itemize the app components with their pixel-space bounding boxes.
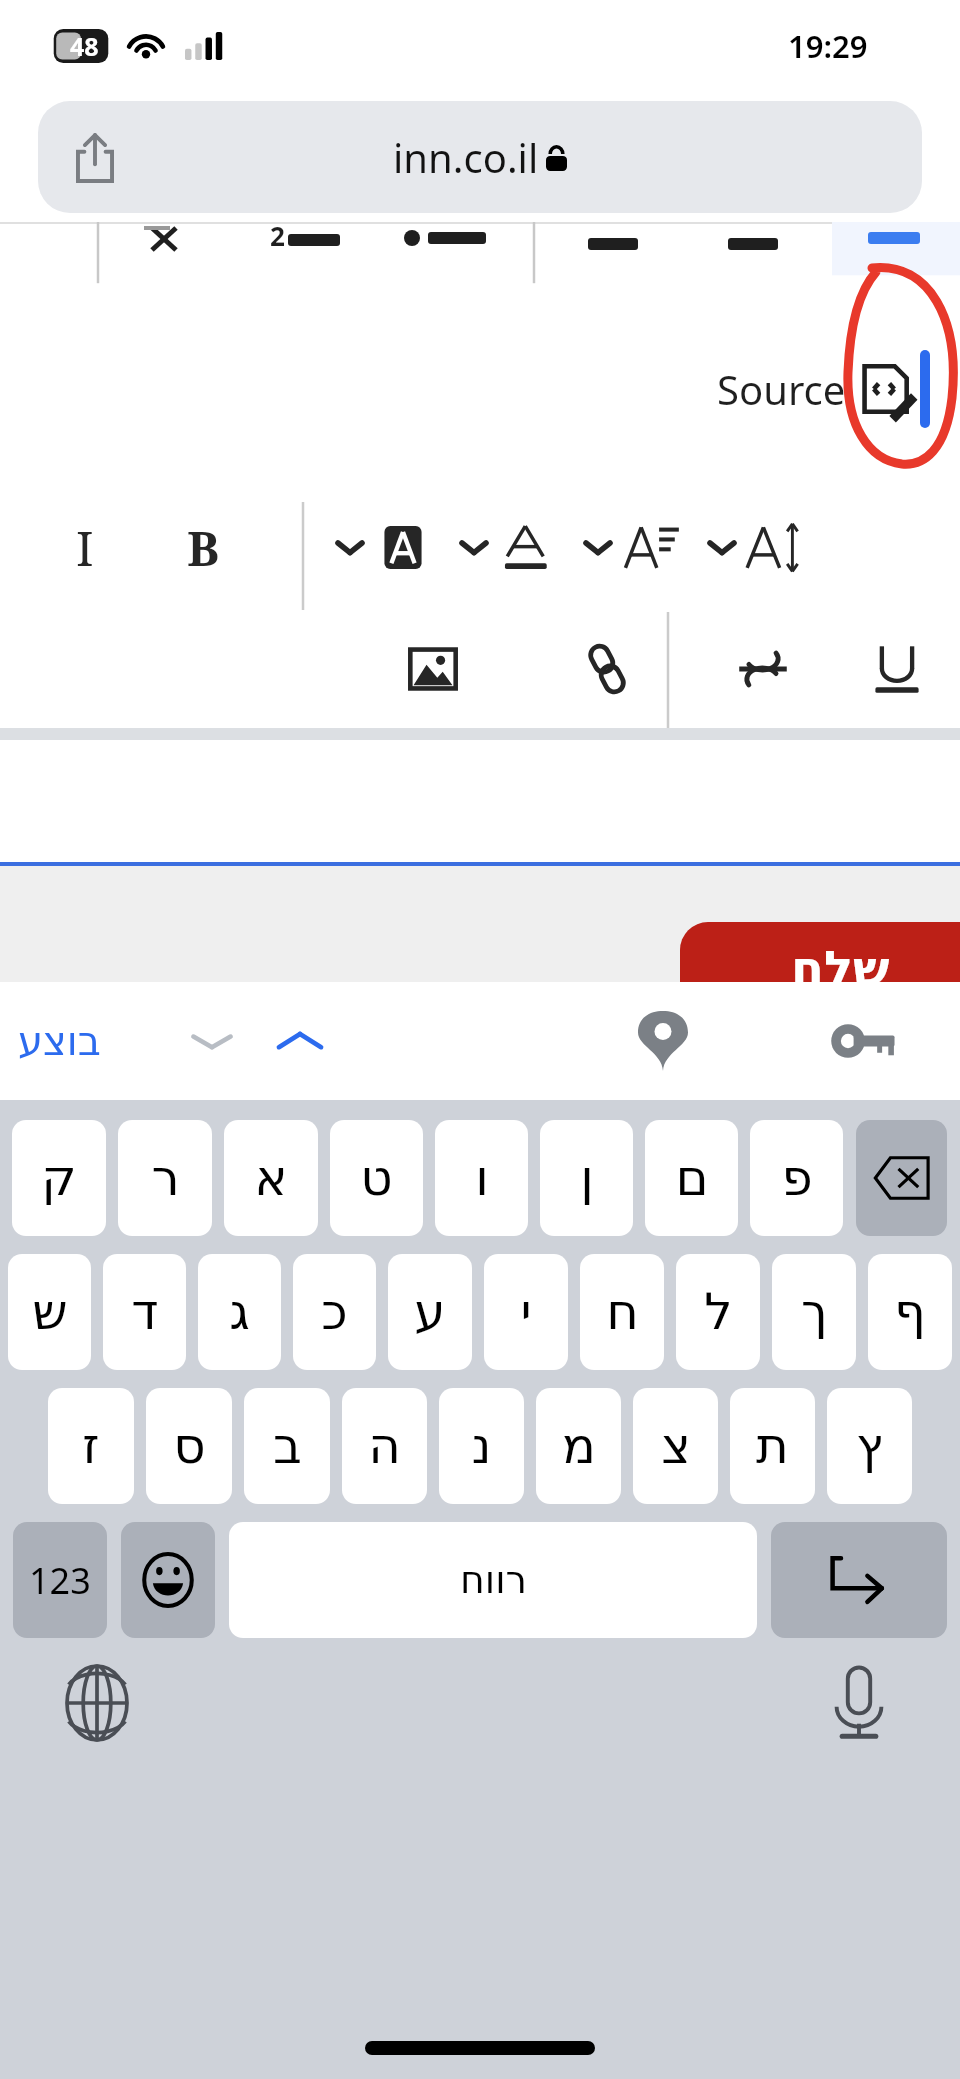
- button[interactable]: Previous: [170, 999, 254, 1083]
- staticText: ק: [41, 1149, 77, 1207]
- button[interactable]: שלח: [680, 922, 960, 1038]
- staticText: ג: [229, 1283, 250, 1341]
- button[interactable]: [702, 518, 804, 576]
- staticText: ב: [273, 1417, 302, 1475]
- staticText: כ: [321, 1283, 348, 1341]
- button[interactable]: כ: [293, 1254, 376, 1370]
- button[interactable]: Share: [60, 122, 130, 192]
- button[interactable]: Return: [771, 1522, 947, 1638]
- button[interactable]: ט: [330, 1120, 423, 1236]
- staticText: ן: [580, 1149, 594, 1207]
- button[interactable]: ג: [198, 1254, 281, 1370]
- button[interactable]: Source code: [854, 359, 914, 419]
- button[interactable]: א: [224, 1120, 318, 1236]
- staticText: 123: [29, 1556, 91, 1605]
- button[interactable]: ן: [540, 1120, 633, 1236]
- staticText: B: [187, 515, 220, 580]
- staticText: שלח: [791, 940, 890, 996]
- staticText: inn.co.il: [393, 130, 539, 184]
- button[interactable]: ר: [118, 1120, 212, 1236]
- button[interactable]: Backspace: [856, 1120, 947, 1236]
- button[interactable]: Strikethrough: [728, 634, 798, 704]
- staticText: בוצע: [18, 1018, 101, 1065]
- button[interactable]: ץ: [827, 1388, 912, 1504]
- staticText: א: [254, 1149, 288, 1207]
- button[interactable]: ע: [388, 1254, 472, 1370]
- button[interactable]: Insert image: [398, 634, 468, 704]
- button[interactable]: 123: [13, 1522, 107, 1638]
- staticText: ת: [756, 1417, 789, 1475]
- button[interactable]: ה: [342, 1388, 427, 1504]
- button[interactable]: ש: [8, 1254, 91, 1370]
- staticText: 2: [270, 218, 285, 253]
- staticText: ל: [704, 1283, 733, 1341]
- button[interactable]: בוצע: [18, 1018, 101, 1065]
- button[interactable]: ק: [12, 1120, 106, 1236]
- button[interactable]: B: [170, 514, 236, 580]
- button[interactable]: ל: [676, 1254, 760, 1370]
- staticText: פ: [781, 1149, 813, 1207]
- button[interactable]: צ: [633, 1388, 718, 1504]
- staticText: 19:29: [788, 25, 868, 67]
- button[interactable]: Location: [621, 999, 705, 1083]
- staticText: ש: [32, 1283, 68, 1341]
- staticText: ץ: [856, 1417, 883, 1475]
- staticText: Source: [717, 362, 846, 416]
- button[interactable]: ף: [868, 1254, 952, 1370]
- button[interactable]: ד: [103, 1254, 186, 1370]
- staticText: ז: [82, 1417, 100, 1475]
- staticText: ם: [675, 1149, 709, 1207]
- staticText: צ: [661, 1417, 691, 1475]
- button[interactable]: Insert link: [572, 634, 642, 704]
- staticText: ך: [801, 1283, 828, 1341]
- staticText: ע: [414, 1283, 446, 1341]
- button[interactable]: ת: [730, 1388, 815, 1504]
- staticText: ט: [360, 1149, 393, 1207]
- button[interactable]: [578, 518, 680, 576]
- staticText: ף: [894, 1283, 926, 1341]
- staticText: I: [76, 515, 94, 580]
- staticText: ר: [151, 1149, 180, 1207]
- button[interactable]: Next: [258, 999, 342, 1083]
- button[interactable]: ך: [772, 1254, 856, 1370]
- staticText: נ: [471, 1417, 492, 1475]
- button[interactable]: ס: [146, 1388, 232, 1504]
- button[interactable]: Share: [38, 101, 922, 213]
- button[interactable]: י: [484, 1254, 568, 1370]
- button[interactable]: ב: [244, 1388, 330, 1504]
- button[interactable]: ו: [435, 1120, 528, 1236]
- staticText: ה: [368, 1417, 401, 1475]
- button[interactable]: Underline: [862, 634, 932, 704]
- button[interactable]: I: [52, 514, 118, 580]
- button[interactable]: ז: [48, 1388, 134, 1504]
- staticText: ו: [475, 1149, 489, 1207]
- button[interactable]: Passwords: [824, 999, 908, 1083]
- staticText: ס: [173, 1417, 206, 1475]
- staticText: מ: [562, 1417, 596, 1475]
- button[interactable]: ח: [580, 1254, 664, 1370]
- staticText: ד: [131, 1283, 159, 1341]
- staticText: י: [520, 1283, 532, 1341]
- button[interactable]: Emoji: [121, 1522, 215, 1638]
- button[interactable]: Change keyboard: [52, 1658, 142, 1748]
- button[interactable]: Dictation: [814, 1658, 904, 1748]
- button[interactable]: נ: [439, 1388, 524, 1504]
- button[interactable]: מ: [536, 1388, 621, 1504]
- staticText: ח: [606, 1283, 639, 1341]
- staticText: רווח: [460, 1558, 527, 1602]
- button[interactable]: רווח: [229, 1522, 757, 1638]
- button[interactable]: פ: [750, 1120, 843, 1236]
- button[interactable]: [454, 518, 556, 576]
- button[interactable]: ם: [645, 1120, 738, 1236]
- staticText: 48: [70, 29, 99, 63]
- button[interactable]: [330, 518, 432, 576]
